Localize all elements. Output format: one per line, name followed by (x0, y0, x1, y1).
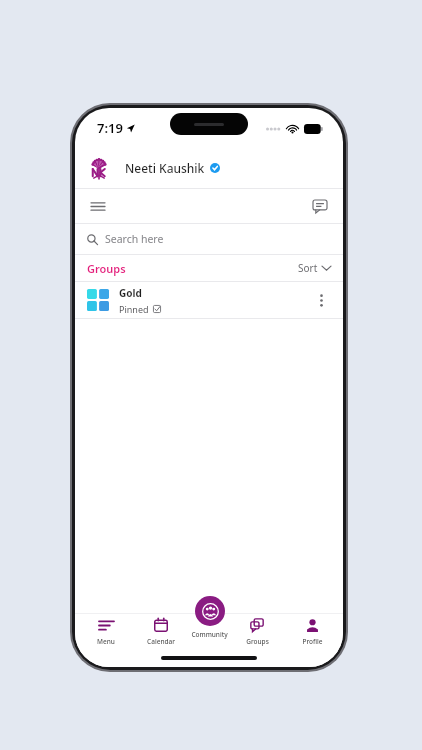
staticText: Groups (246, 637, 269, 646)
button[interactable]: Search here (75, 224, 343, 254)
staticText: Gold (119, 286, 142, 300)
staticText: Sort (298, 261, 318, 275)
button[interactable]: Gold (75, 282, 343, 318)
button[interactable]: Neeti Kaushik (75, 148, 343, 188)
staticText: 7:19 (97, 119, 123, 137)
staticText: Profile (302, 637, 323, 646)
staticText: Community (191, 630, 228, 639)
button[interactable]: Sort (296, 259, 333, 277)
button[interactable]: Menu (83, 191, 113, 221)
button[interactable]: Menu (82, 615, 130, 646)
staticText: Neeti Kaushik (125, 160, 205, 176)
staticText: Groups (87, 261, 126, 276)
staticText: Calendar (147, 637, 175, 646)
staticText: Search here (105, 232, 164, 246)
button[interactable]: More options (309, 288, 333, 312)
staticText: Pinned (119, 303, 149, 315)
button[interactable]: Messages (305, 191, 335, 221)
button[interactable]: Calendar (137, 615, 185, 646)
button[interactable]: Community (191, 596, 228, 639)
button[interactable]: Groups (233, 615, 281, 646)
button[interactable]: Profile (288, 615, 336, 646)
staticText: Menu (97, 637, 115, 646)
